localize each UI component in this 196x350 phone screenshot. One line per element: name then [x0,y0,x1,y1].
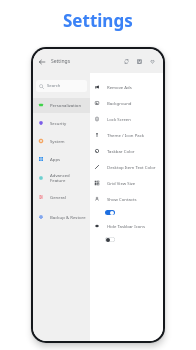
staticText: Backup & Restore [50,214,86,220]
staticText: Advanced Feature [50,172,70,183]
button[interactable]: Personalization [33,96,90,114]
staticText: Apps [50,156,61,162]
button[interactable]: General [33,187,90,207]
button[interactable]: Theme / Icon Pack [90,127,163,143]
button[interactable]: Save [134,56,145,67]
staticText: Theme / Icon Pack [107,132,144,138]
staticText: Remove Ads [107,84,132,90]
staticText: Taskbar Color [107,148,135,154]
button[interactable]: Remove Ads [90,79,163,95]
button[interactable]: Refresh [121,56,132,67]
button[interactable]: Grid View Size [90,175,163,191]
button[interactable]: Apps [33,150,90,168]
button[interactable]: System [33,132,90,150]
button[interactable]: Show Contacts [90,191,163,218]
staticText: Security [50,120,67,126]
staticText: Hide Taskbar Icons [107,223,146,229]
button[interactable]: Advanced Feature [33,168,90,187]
button[interactable]: Favorite [147,56,158,67]
button[interactable]: Security [33,114,90,132]
button[interactable]: Search [36,80,87,92]
staticText: Grid View Size [107,180,136,186]
button[interactable]: Hide Taskbar Icons [90,218,163,245]
staticText: Lock Screen [107,116,131,122]
staticText: Search [47,83,61,89]
button[interactable]: Back [36,56,47,67]
staticText: Settings [63,9,133,32]
staticText: System [50,138,65,144]
button[interactable]: Taskbar Color [90,143,163,159]
staticText: Background [107,100,132,106]
button[interactable]: Backup & Restore [33,207,90,227]
button[interactable]: Lock Screen [90,111,163,127]
button[interactable]: Background [90,95,163,111]
staticText: Show Contacts [107,196,137,202]
staticText: Desktop Item Text Color [107,164,156,170]
staticText: Personalization [50,102,82,108]
button[interactable]: Desktop Item Text Color [90,159,163,175]
staticText: General [50,194,66,200]
staticText: Settings [51,58,71,65]
